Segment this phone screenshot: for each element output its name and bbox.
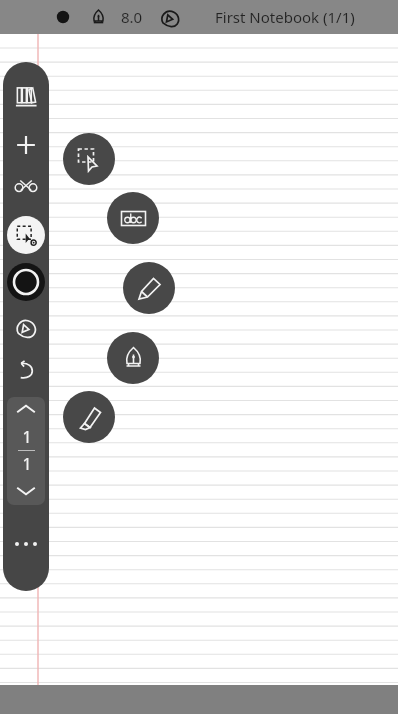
button[interactable]: 1 [7, 421, 45, 479]
button[interactable]: Library [3, 80, 49, 114]
button[interactable]: More options [3, 529, 49, 559]
button[interactable]: Flick gesture [157, 5, 183, 31]
staticText: 1 [22, 453, 32, 475]
staticText: 8.0 [121, 7, 143, 27]
button[interactable]: Previous page [7, 397, 45, 421]
button[interactable]: Undo [3, 353, 49, 387]
button[interactable]: Fountain pen tool [107, 332, 159, 384]
button[interactable]: Add page [3, 128, 49, 162]
button[interactable]: Text tool [107, 192, 159, 244]
button[interactable]: Select tool [63, 133, 115, 185]
staticText: 1 [22, 426, 32, 448]
button[interactable]: Flick gesture [3, 311, 49, 345]
button[interactable]: Highlighter tool [63, 391, 115, 443]
button[interactable]: Scissors [3, 174, 49, 208]
button[interactable]: First Notebook (1/1) [215, 7, 355, 27]
button[interactable]: Pen settings [85, 4, 111, 30]
button[interactable]: Stroke colour and width [7, 263, 45, 301]
button[interactable]: Lasso select [7, 216, 45, 254]
button[interactable]: Current colour [53, 7, 73, 27]
button[interactable]: Pencil tool [123, 262, 175, 314]
button[interactable]: Next page [7, 479, 45, 503]
button[interactable]: 8.0 [113, 0, 151, 34]
